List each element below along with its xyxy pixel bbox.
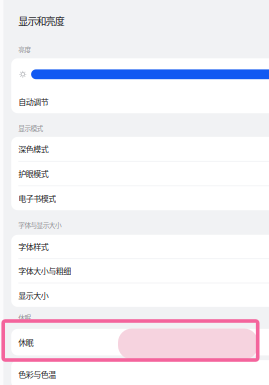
staticText: 字体样式 <box>18 241 49 252</box>
staticText: 色彩与色温 <box>18 368 56 380</box>
staticText: 电子书模式 <box>18 192 56 204</box>
staticText: 休眠 <box>18 313 31 322</box>
staticText: 显示模式 <box>18 123 44 133</box>
button[interactable]: 护眼模式 <box>11 162 269 185</box>
staticText: 护眼模式 <box>18 168 49 179</box>
staticText: 字体与显示大小 <box>18 220 62 230</box>
button[interactable]: 自动调节 <box>11 90 269 113</box>
button[interactable]: 深色模式 <box>11 137 269 161</box>
button[interactable]: 显示大小 <box>11 283 269 307</box>
staticText: 自动调节 <box>18 96 49 108</box>
staticText: 亮度 <box>18 45 31 54</box>
staticText: 休眠 <box>18 336 34 348</box>
button[interactable]: 电子书模式 <box>11 186 269 210</box>
button[interactable]: 休眠 <box>11 329 269 355</box>
staticText: 显示大小 <box>18 289 49 301</box>
button[interactable]: 字体样式 <box>11 235 269 258</box>
button[interactable]: 色彩与色温 <box>11 360 269 385</box>
staticText: 显示和亮度 <box>18 14 65 28</box>
button[interactable]: 字体大小与粗细 <box>11 259 269 283</box>
staticText: 字体大小与粗细 <box>18 265 71 277</box>
staticText: 深色模式 <box>18 143 49 155</box>
